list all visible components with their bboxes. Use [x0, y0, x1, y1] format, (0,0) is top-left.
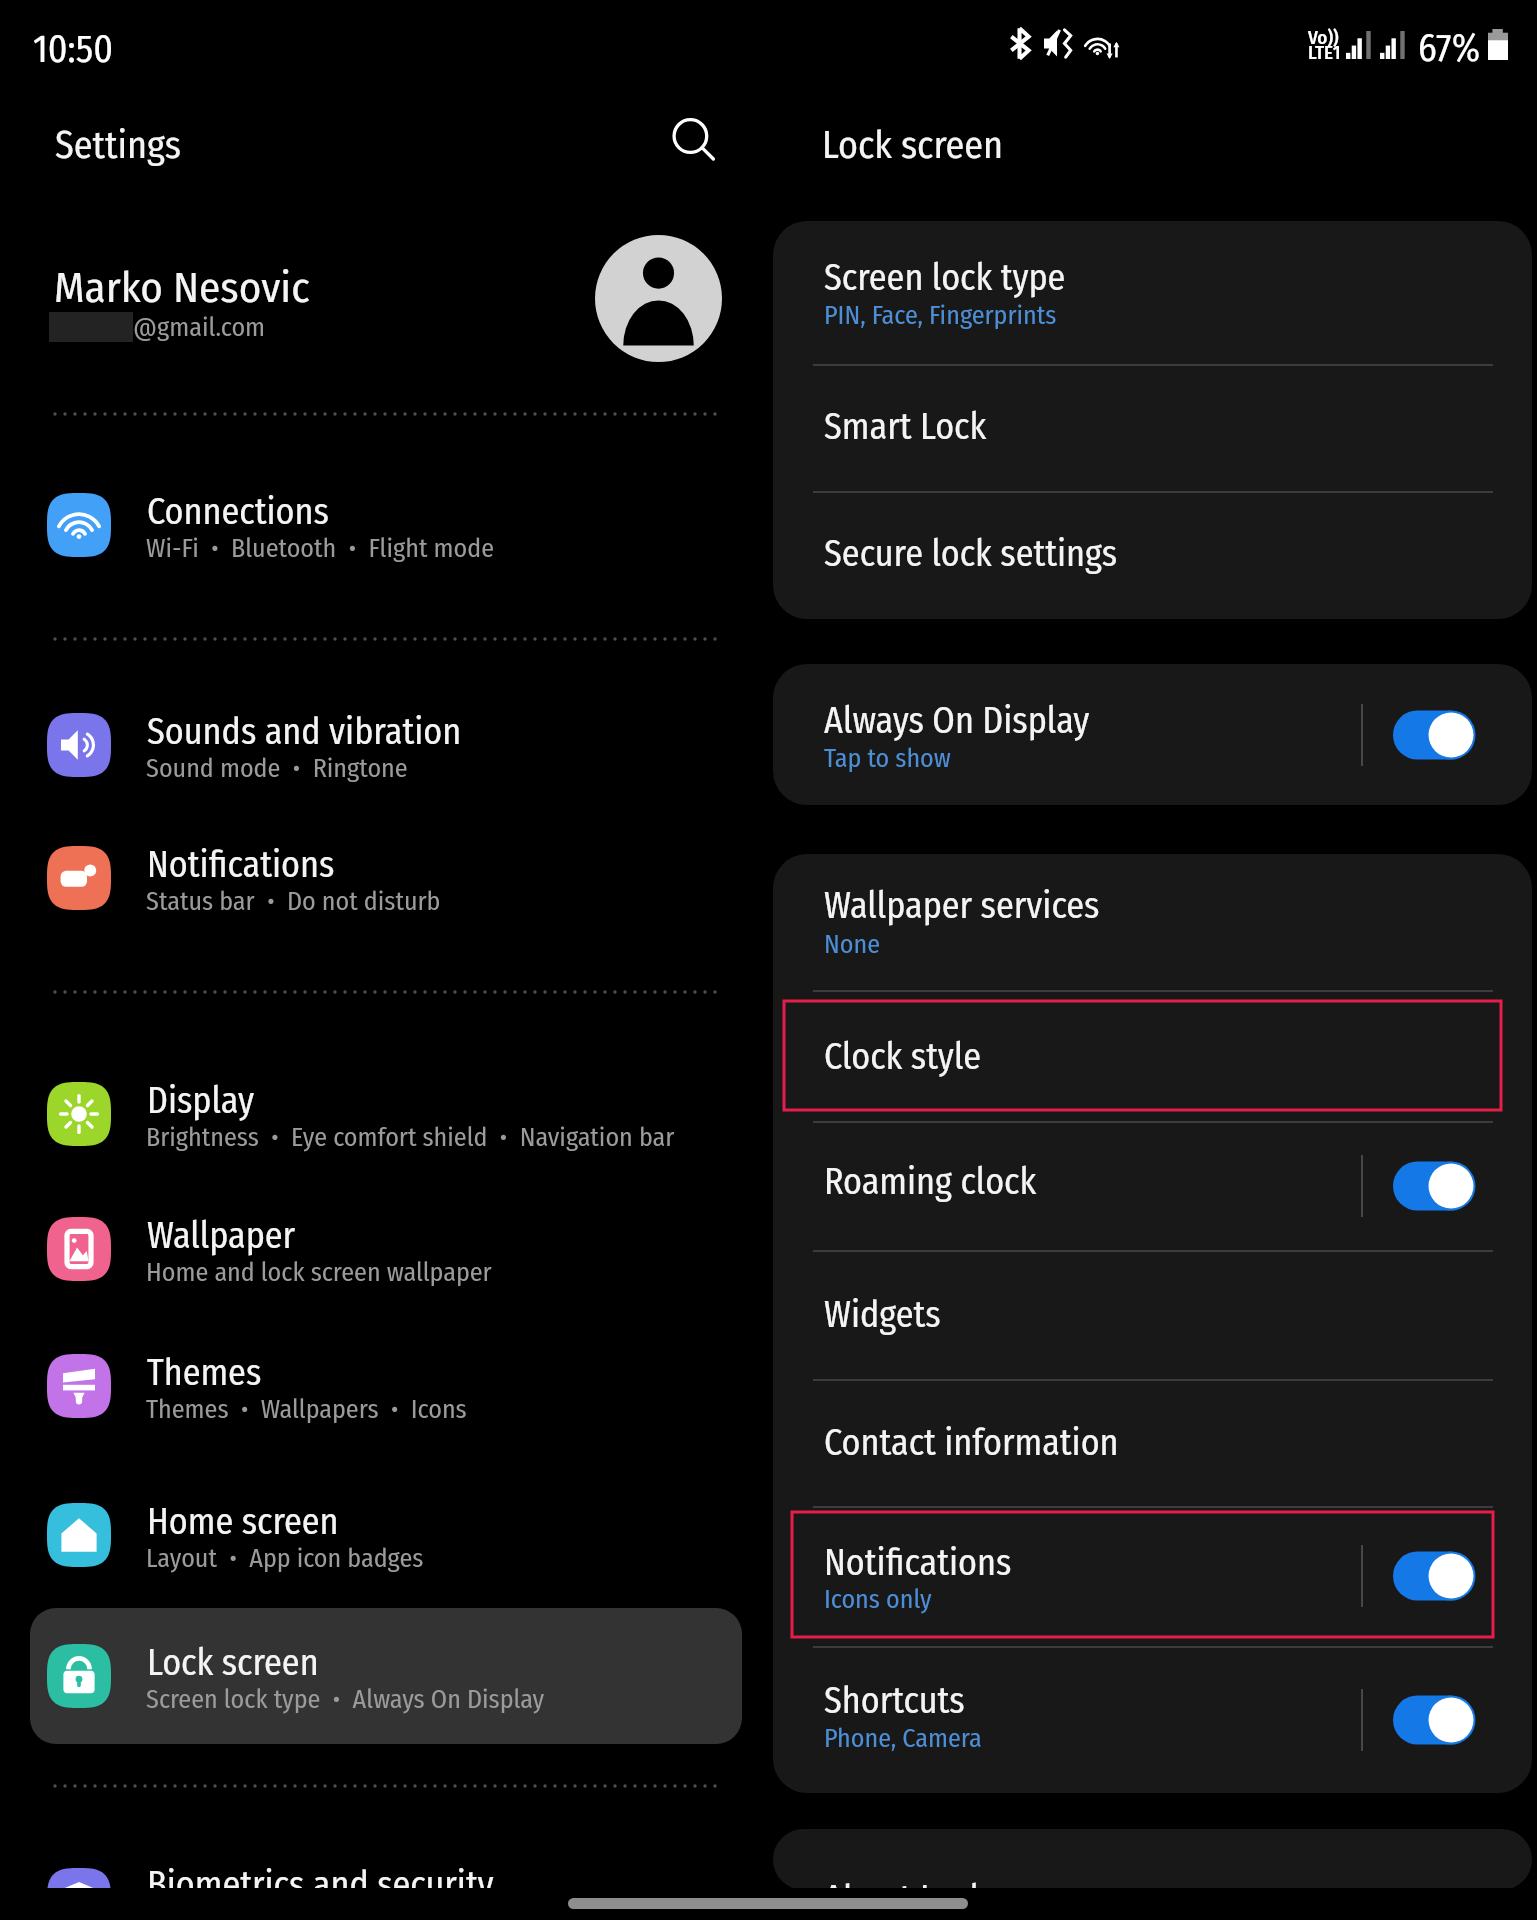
button[interactable]: Wallpaper: [30, 1183, 742, 1315]
button[interactable]: Wallpaper services: [773, 854, 1532, 990]
staticText: Lock screen: [147, 1641, 319, 1684]
button[interactable]: Toggle Always On Display: [1385, 699, 1503, 771]
staticText: Widgets: [824, 1293, 941, 1336]
staticText: Clock style: [824, 1035, 982, 1078]
staticText: Sound mode • Ringtone: [146, 753, 408, 784]
button[interactable]: Biometrics and security: [30, 1814, 742, 1920]
staticText: Screen lock type • Always On Display: [146, 1684, 545, 1715]
staticText: Wallpaper: [147, 1214, 296, 1257]
staticText: Biometrics and security: [147, 1863, 494, 1906]
button[interactable]: Toggle Roaming clock: [1385, 1150, 1503, 1222]
button[interactable]: About Lock screen: [773, 1829, 1532, 1890]
button[interactable]: Connections: [30, 459, 742, 591]
staticText: Settings: [55, 122, 181, 168]
staticText: 67%: [1418, 25, 1481, 71]
staticText: Wallpaper services: [824, 884, 1100, 927]
button[interactable]: Lock screen: [30, 1608, 742, 1744]
staticText: Secure lock settings: [824, 532, 1118, 575]
button[interactable]: Notifications: [30, 812, 742, 944]
staticText: PIN, Face, Fingerprints: [824, 300, 1057, 331]
button[interactable]: Sounds and vibration: [30, 679, 742, 811]
staticText: Screen lock type: [824, 256, 1066, 299]
button[interactable]: Toggle Notifications: [1385, 1540, 1503, 1612]
button[interactable]: Always On Display: [773, 664, 1532, 805]
staticText: Sounds and vibration: [147, 710, 462, 753]
staticText: Tap to show: [824, 743, 951, 774]
staticText: Vo)): [1308, 26, 1339, 49]
staticText: Roaming clock: [824, 1160, 1037, 1203]
staticText: Themes • Wallpapers • Icons: [146, 1394, 467, 1425]
button[interactable]: Search: [656, 103, 734, 181]
staticText: Notifications: [824, 1541, 1012, 1584]
button[interactable]: Screen lock type: [773, 221, 1532, 364]
staticText: Smart Lock: [824, 405, 987, 448]
button[interactable]: Contact information: [773, 1379, 1532, 1506]
button[interactable]: Display: [30, 1048, 742, 1180]
button[interactable]: Toggle Shortcuts: [1385, 1684, 1503, 1756]
staticText: Contact information: [824, 1421, 1119, 1464]
button[interactable]: Secure lock settings: [773, 491, 1532, 619]
staticText: Status bar • Do not disturb: [146, 886, 441, 917]
button[interactable]: Clock style: [773, 990, 1532, 1121]
button[interactable]: Smart Lock: [773, 364, 1532, 491]
staticText: Marko Nesovic: [54, 262, 310, 314]
staticText: Always On Display: [824, 699, 1090, 742]
staticText: Icons only: [824, 1584, 932, 1615]
staticText: Home screen: [147, 1500, 339, 1543]
staticText: About Lock screen: [824, 1877, 1092, 1890]
staticText: 10:50: [33, 26, 114, 72]
staticText: @gmail.com: [133, 312, 266, 343]
staticText: Shortcuts: [824, 1679, 965, 1722]
staticText: LTE1: [1308, 41, 1341, 64]
staticText: Layout • App icon badges: [146, 1543, 424, 1574]
staticText: Themes: [147, 1351, 262, 1394]
staticText: Connections: [147, 490, 329, 533]
staticText: Home and lock screen wallpaper: [146, 1257, 492, 1288]
button[interactable]: Widgets: [773, 1250, 1532, 1379]
button[interactable]: Home screen: [30, 1469, 742, 1601]
staticText: Lock screen: [822, 122, 1004, 168]
staticText: None: [824, 929, 881, 960]
staticText: Display: [147, 1079, 254, 1122]
button[interactable]: Notifications: [773, 1506, 1532, 1646]
button[interactable]: Shortcuts: [773, 1646, 1532, 1793]
button[interactable]: Roaming clock: [773, 1121, 1532, 1250]
staticText: Wi-Fi • Bluetooth • Flight mode: [146, 533, 494, 564]
staticText: Phone, Camera: [824, 1723, 982, 1754]
staticText: Notifications: [147, 843, 335, 886]
button[interactable]: Themes: [30, 1320, 742, 1452]
button[interactable]: Marko Nesovic: [0, 228, 769, 373]
staticText: Brightness • Eye comfort shield • Naviga…: [146, 1122, 675, 1153]
